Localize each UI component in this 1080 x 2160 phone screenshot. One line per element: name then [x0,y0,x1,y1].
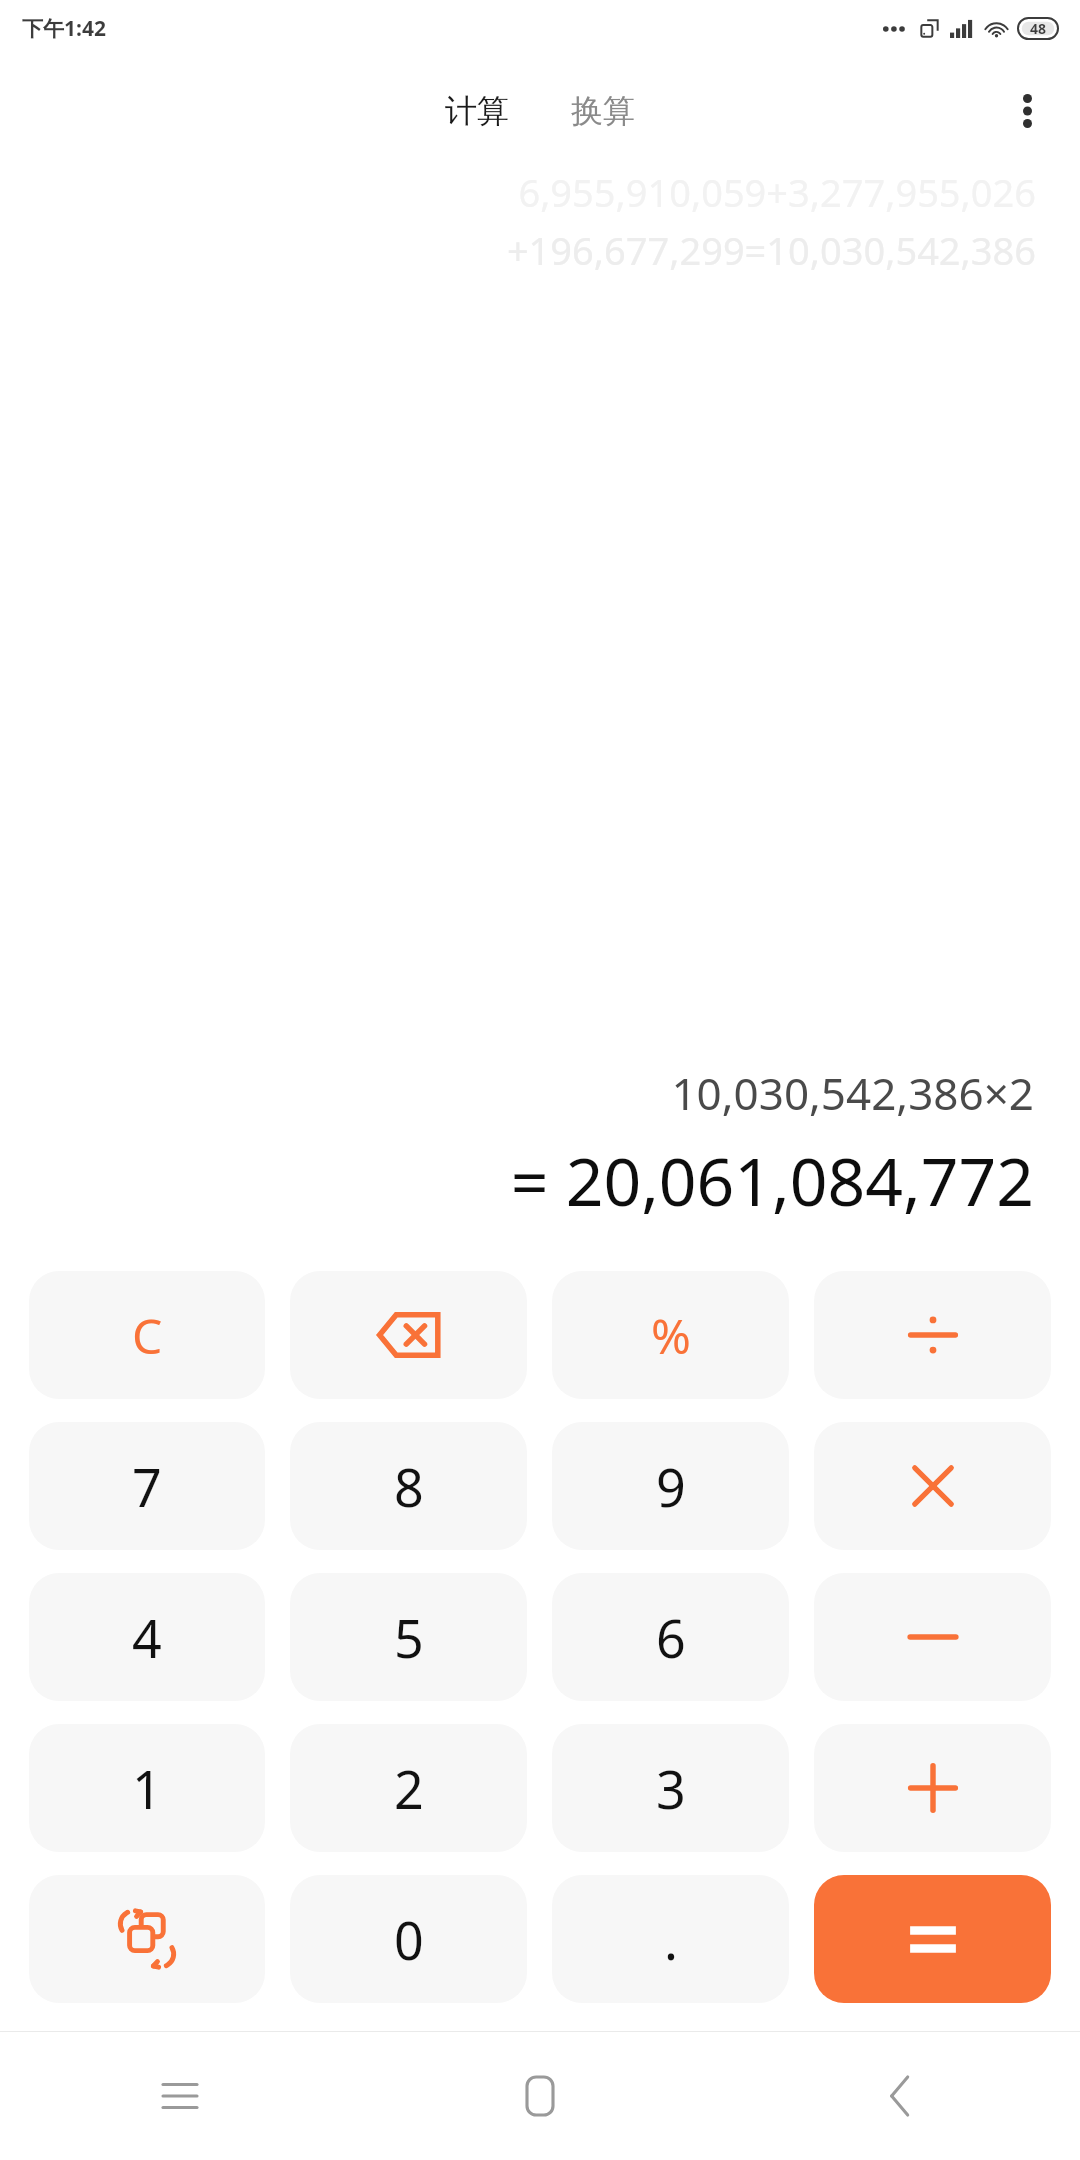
button[interactable]: Delete [290,1271,527,1399]
button[interactable]: 7 [29,1422,265,1550]
button[interactable]: Home [360,2032,720,2160]
button[interactable]: Equals [814,1875,1051,2003]
staticText: 10,030,542,386×2 [46,1063,1034,1123]
button[interactable]: Multiply [814,1422,1051,1550]
button[interactable]: 1 [29,1724,265,1852]
staticText: = 20,061,084,772 [46,1135,1034,1225]
button[interactable]: C [29,1271,265,1399]
staticText: 48 [1030,19,1047,38]
button[interactable]: Add [814,1724,1051,1852]
button[interactable]: 0 [290,1875,527,2003]
staticText: 2 [394,1753,424,1824]
button[interactable]: Recent apps [0,2032,360,2160]
button[interactable]: Subtract [814,1573,1051,1701]
staticText: 计算 [445,91,509,131]
button[interactable]: % [552,1271,789,1399]
staticText: 3 [656,1753,686,1824]
staticText: 6,955,910,059+3,277,955,026 [44,166,1036,218]
button[interactable]: 换算 [559,83,647,139]
button[interactable]: 计算 [433,83,521,139]
staticText: 8 [394,1451,424,1522]
button[interactable]: 8 [290,1422,527,1550]
button[interactable]: 4 [29,1573,265,1701]
button[interactable]: 5 [290,1573,527,1701]
button[interactable]: Back [720,2032,1080,2160]
button[interactable]: 6 [552,1573,789,1701]
staticText: 5 [394,1602,424,1673]
button[interactable]: 9 [552,1422,789,1550]
staticText: 换算 [571,91,635,131]
staticText: 0 [394,1904,424,1975]
staticText: % [651,1303,691,1368]
staticText: 1 [132,1753,162,1824]
staticText: 4 [132,1602,162,1673]
button[interactable]: More options [994,78,1060,144]
button[interactable]: 2 [290,1724,527,1852]
button[interactable]: . [552,1875,789,2003]
staticText: 9 [656,1451,686,1522]
button[interactable]: 3 [552,1724,789,1852]
staticText: 6 [656,1602,686,1673]
button[interactable]: Convert [29,1875,265,2003]
staticText: C [132,1303,163,1368]
staticText: . [664,1904,678,1975]
staticText: 下午1:42 [22,14,106,43]
staticText: 7 [132,1451,162,1522]
button[interactable]: Divide [814,1271,1051,1399]
staticText: +196,677,299=10,030,542,386 [44,224,1036,276]
